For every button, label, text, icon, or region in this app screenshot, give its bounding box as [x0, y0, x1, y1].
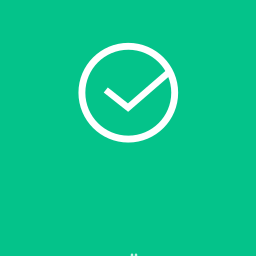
button[interactable]: Success — [0, 0, 256, 256]
